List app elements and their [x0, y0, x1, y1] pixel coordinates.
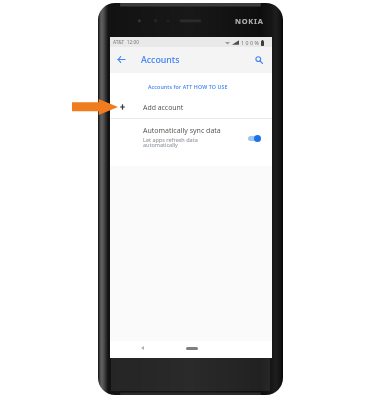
- staticText: Automatically sync data: [143, 126, 221, 136]
- button[interactable]: Home: [180, 342, 204, 354]
- staticText: Let apps refresh data automatically: [143, 136, 198, 149]
- staticText: Accounts for ATT HOW TO USE: [148, 83, 228, 90]
- button[interactable]: Back: [135, 339, 149, 356]
- button[interactable]: Back: [112, 51, 129, 68]
- button[interactable]: Search: [251, 52, 267, 68]
- staticText: Accounts: [141, 54, 180, 66]
- button[interactable]: Automatically sync data: [110, 118, 272, 166]
- staticText: NOKIA: [235, 16, 264, 26]
- staticText: AT&T 12:00: [113, 39, 139, 46]
- staticText: Add account: [143, 103, 184, 112]
- staticText: 100%: [241, 39, 261, 46]
- button[interactable]: Add account: [110, 96, 272, 118]
